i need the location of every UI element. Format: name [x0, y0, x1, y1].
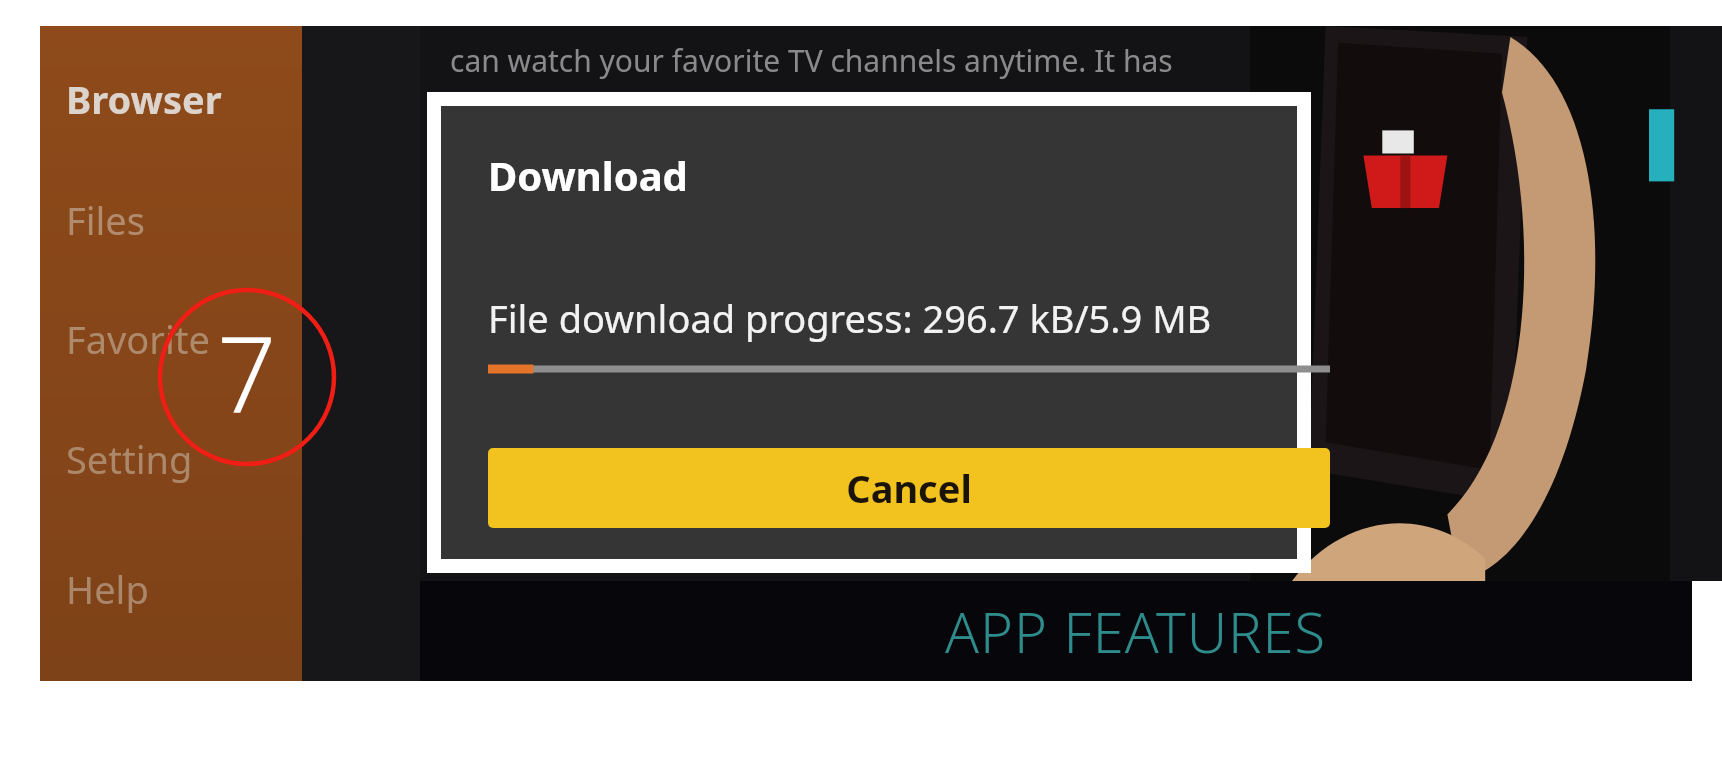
staticText: Favorite [66, 313, 210, 365]
staticText: 1000+ live channels from 15 different co… [450, 89, 1121, 130]
staticText: Help [66, 563, 149, 615]
staticText: Files [66, 194, 145, 246]
staticText: File download progress: 296.7 kB/5.9 MB [488, 292, 1212, 344]
button[interactable]: Setting [40, 404, 302, 514]
staticText: can watch your favorite TV channels anyt… [450, 40, 1173, 81]
staticText: Setting [66, 433, 193, 485]
staticText: Download [488, 148, 688, 202]
button[interactable]: Favorite [40, 284, 302, 394]
staticText: Cancel [846, 462, 972, 514]
button[interactable]: Browser [40, 44, 302, 154]
button[interactable]: Help [40, 534, 302, 644]
staticText: APP FEATURES [945, 593, 1327, 669]
button[interactable]: Cancel [488, 448, 1330, 528]
staticText: Browser [66, 73, 222, 125]
button[interactable]: Files [40, 165, 302, 275]
staticText: 7 [217, 302, 277, 444]
